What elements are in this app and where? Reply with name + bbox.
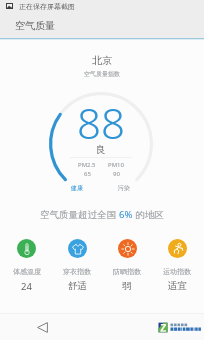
staticText: 体感温度 <box>13 267 41 276</box>
staticText: 空气质量指数 <box>84 70 120 78</box>
staticText: 弱 <box>122 280 132 292</box>
staticText: 88 <box>77 94 125 151</box>
button[interactable]: 防晒指数 <box>102 239 152 292</box>
staticText: 良 <box>96 143 106 156</box>
staticText: 90 <box>113 170 120 178</box>
staticText: 健康 <box>71 184 83 192</box>
button[interactable]: 体感温度 <box>1 239 52 293</box>
staticText: 适宜 <box>168 280 187 292</box>
staticText: PM10 <box>108 161 124 169</box>
staticText: 65 <box>84 170 91 178</box>
staticText: 空气质量超过全国 <box>40 208 119 221</box>
staticText: 正在保存屏幕截图 <box>19 2 75 11</box>
button[interactable]: 运动指数 <box>152 239 202 292</box>
staticText: 防晒指数 <box>113 267 141 276</box>
button[interactable]: 空气质量 <box>0 12 204 38</box>
staticText: 6% <box>119 208 133 221</box>
button[interactable]: ZOL.com.cn <box>158 322 201 333</box>
staticText: 的地区 <box>133 208 164 221</box>
staticText: PM2.5 <box>78 161 96 169</box>
staticText: 空气质量 <box>15 19 55 32</box>
staticText: 舒适 <box>68 280 87 292</box>
staticText: 24 <box>21 280 32 293</box>
staticText: 运动指数 <box>163 267 191 276</box>
staticText: 污染 <box>118 184 130 192</box>
button[interactable]: 穿衣指数 <box>52 239 102 292</box>
staticText: 穿衣指数 <box>63 267 91 276</box>
button[interactable]: Back <box>30 315 54 339</box>
staticText: 北京 <box>92 54 112 67</box>
